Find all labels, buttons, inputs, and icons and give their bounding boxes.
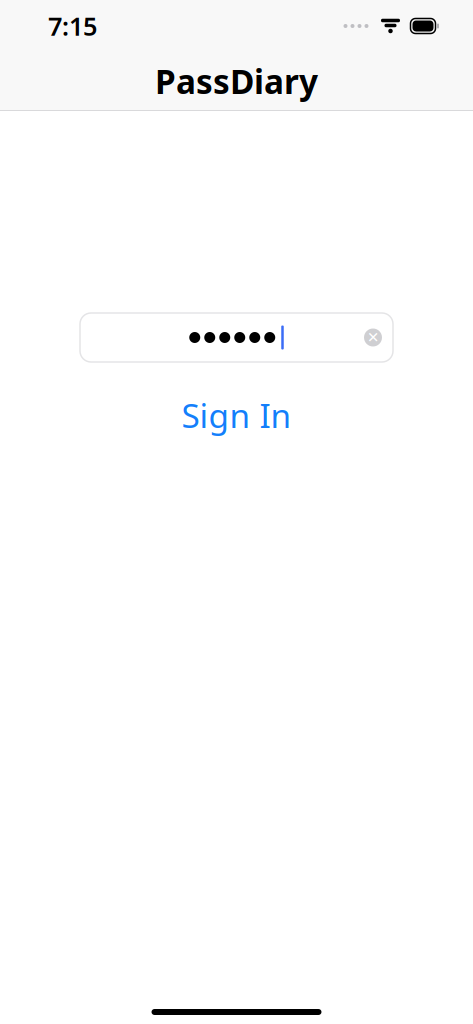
staticText: ✕ xyxy=(367,329,379,346)
button[interactable]: Clear text xyxy=(353,313,393,362)
staticText: 7:15 xyxy=(48,9,97,43)
staticText: PassDiary xyxy=(155,59,318,103)
staticText: Sign In xyxy=(181,393,291,437)
button[interactable]: Sign In xyxy=(80,398,393,432)
